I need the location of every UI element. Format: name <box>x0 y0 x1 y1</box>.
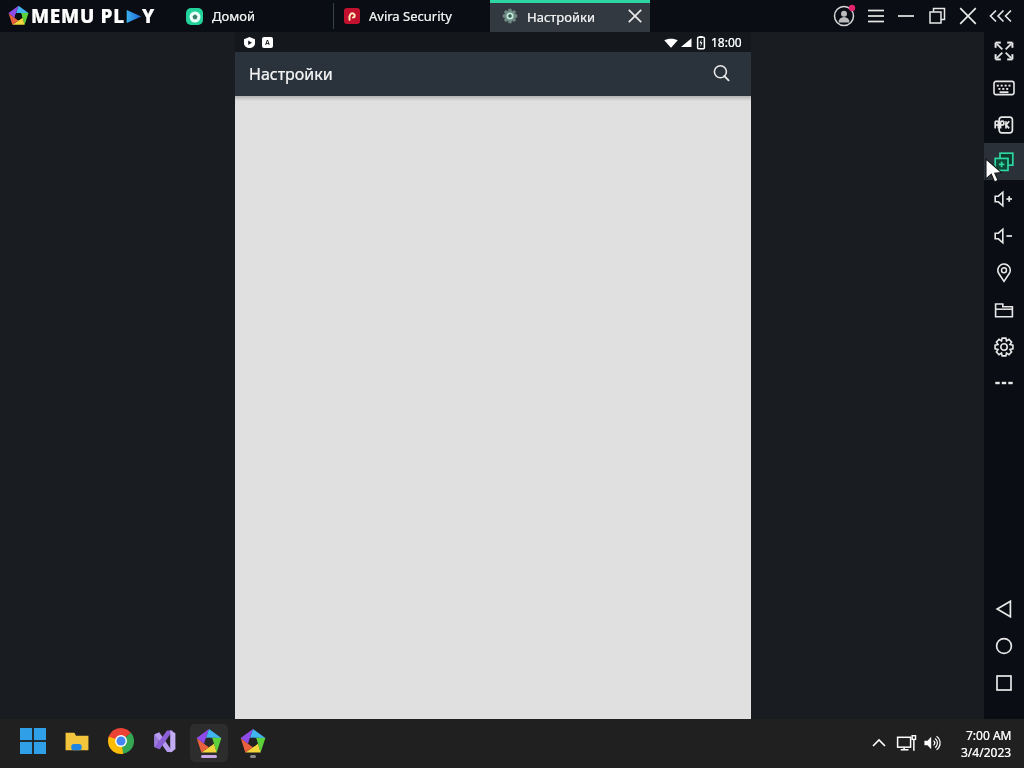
staticText: Avira Security <box>369 7 452 25</box>
button[interactable]: Volume down <box>984 217 1024 254</box>
button[interactable]: MEmu <box>190 724 228 762</box>
button[interactable]: Start <box>14 724 52 762</box>
button[interactable]: Settings <box>984 328 1024 365</box>
staticText: 3/4/2023 <box>961 744 1012 760</box>
staticText: 7:00 AM <box>966 727 1012 743</box>
staticText: MEMU PL <box>31 3 125 29</box>
staticText: Домой <box>212 7 255 25</box>
button[interactable]: Keyboard <box>984 69 1024 106</box>
button[interactable]: Back <box>984 590 1024 627</box>
button[interactable]: Настройки <box>490 0 650 32</box>
button[interactable]: 7:00 AM <box>952 727 1012 760</box>
button[interactable]: Close tab <box>625 6 645 26</box>
button[interactable]: Restore <box>924 3 950 29</box>
button[interactable]: Shared folder <box>984 291 1024 328</box>
button[interactable]: Menu <box>863 3 889 29</box>
button[interactable]: Avira Security <box>344 0 452 32</box>
staticText: 18:00 <box>711 34 742 50</box>
button[interactable]: File Explorer <box>58 724 96 762</box>
button[interactable]: Location <box>984 254 1024 291</box>
staticText: Y <box>142 3 155 29</box>
button[interactable]: Fullscreen <box>984 32 1024 69</box>
button[interactable]: Show hidden icons <box>866 730 892 756</box>
button[interactable]: Search <box>709 61 735 87</box>
button[interactable]: Account <box>831 3 857 29</box>
button[interactable]: Close <box>955 3 981 29</box>
button[interactable]: Multi window <box>984 143 1024 180</box>
button[interactable]: MEmu Multi <box>234 724 272 762</box>
button[interactable]: Home <box>984 627 1024 664</box>
button[interactable]: Collapse sidebar <box>990 3 1016 29</box>
button[interactable]: Minimize <box>893 3 919 29</box>
button[interactable]: Install APK <box>984 106 1024 143</box>
button[interactable]: Visual Studio <box>146 724 184 762</box>
button[interactable]: Chrome <box>102 724 140 762</box>
button[interactable]: Volume <box>920 730 946 756</box>
button[interactable]: Recents <box>984 664 1024 701</box>
button[interactable]: Network <box>895 730 921 756</box>
staticText: Настройки <box>249 63 333 85</box>
button[interactable]: Домой <box>186 0 255 32</box>
staticText: A <box>265 38 270 48</box>
button[interactable]: More <box>984 364 1024 401</box>
staticText: Настройки <box>527 8 596 26</box>
button[interactable]: Volume up <box>984 180 1024 217</box>
